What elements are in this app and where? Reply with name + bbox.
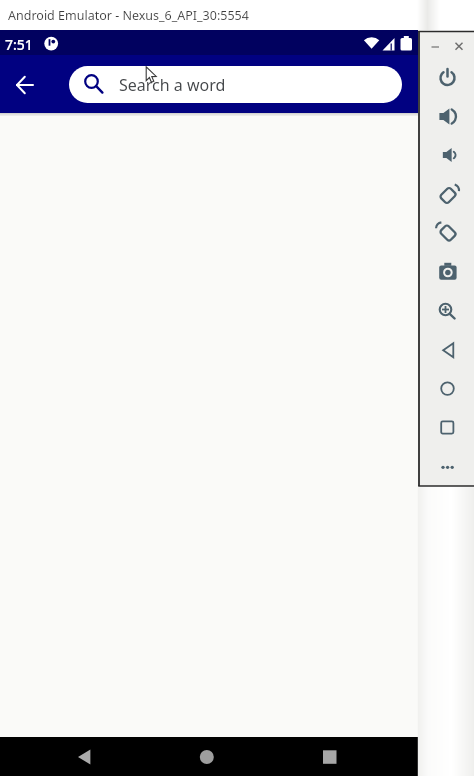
- button[interactable]: [433, 63, 461, 91]
- button[interactable]: [9, 69, 41, 101]
- button[interactable]: [307, 741, 353, 773]
- button[interactable]: [433, 412, 461, 440]
- button[interactable]: [433, 335, 461, 363]
- button[interactable]: [433, 141, 461, 169]
- staticText: Android Emulator - Nexus_6_API_30:5554: [8, 7, 249, 24]
- button[interactable]: [62, 741, 108, 773]
- button[interactable]: Search a word: [69, 66, 402, 103]
- button[interactable]: [184, 741, 230, 773]
- button[interactable]: [433, 451, 461, 479]
- button[interactable]: [433, 218, 461, 246]
- staticText: Search a word: [119, 74, 226, 96]
- staticText: 7:51: [5, 35, 33, 54]
- button[interactable]: [433, 296, 461, 324]
- button[interactable]: [433, 257, 461, 285]
- button[interactable]: [433, 102, 461, 130]
- button[interactable]: [433, 373, 461, 401]
- button[interactable]: [433, 179, 461, 207]
